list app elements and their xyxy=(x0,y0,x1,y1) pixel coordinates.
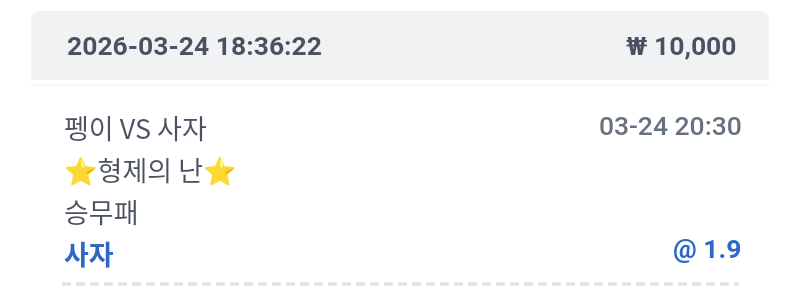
staticText: ⭐형제의 난⭐ xyxy=(64,150,237,189)
staticText: 사자 xyxy=(64,234,114,273)
button[interactable]: 펭이 VS 사자 xyxy=(0,86,800,273)
staticText: 03-24 20:30 xyxy=(599,110,742,141)
staticText: 2026-03-24 18:36:22 xyxy=(67,30,322,61)
button[interactable]: 2026-03-24 18:36:22 xyxy=(31,11,769,80)
staticText: ₩ 10,000 xyxy=(626,30,737,61)
staticText: 승무패 xyxy=(64,192,139,231)
staticText: @ 1.9 xyxy=(673,233,742,264)
staticText: 펭이 VS 사자 xyxy=(64,108,207,147)
